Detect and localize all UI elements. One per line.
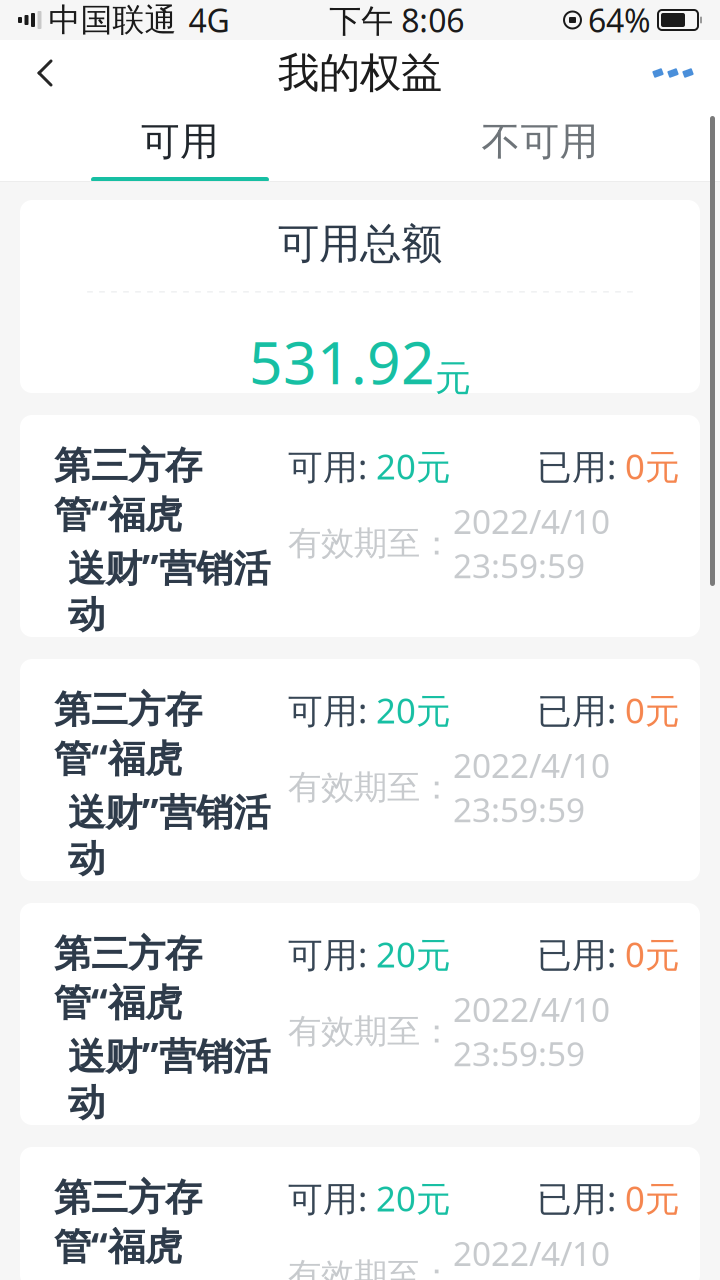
button[interactable]: 第三方存管“福虎 xyxy=(20,659,700,881)
staticText: 送财”营销活动 xyxy=(68,786,270,882)
staticText: 送财”营销活动 xyxy=(68,1030,270,1126)
staticText: 2022/4/10 23:59:59 xyxy=(453,499,610,587)
staticText: 2022/4/10 23:59:59 xyxy=(453,987,610,1075)
staticText: 不可用 xyxy=(481,118,598,165)
staticText: 有效期至： xyxy=(288,1255,453,1280)
staticText: 下午 8:06 xyxy=(329,0,464,41)
staticText: 第三方存管“福虎 xyxy=(54,443,202,538)
staticText: 2022/4/10 23:59:59 xyxy=(453,1231,610,1280)
staticText: 有效期至： xyxy=(288,523,453,564)
button[interactable]: 可用 xyxy=(0,106,360,182)
staticText: 20元 xyxy=(376,1175,451,1221)
staticText: 20元 xyxy=(376,931,451,977)
button[interactable]: 第三方存管“福虎 xyxy=(20,903,700,1125)
staticText: 有效期至： xyxy=(288,1011,453,1052)
staticText: 中国联通 xyxy=(48,0,176,40)
staticText: 我的权益 xyxy=(278,48,442,98)
staticText: 送财”营销活动 xyxy=(68,542,270,638)
staticText: 详细信息 xyxy=(54,941,198,985)
button[interactable]: 不可用 xyxy=(360,106,720,182)
staticText: 详细信息 xyxy=(54,697,198,741)
staticText: 可用总额 xyxy=(278,219,442,269)
staticText: 详细信息 xyxy=(54,1185,198,1229)
staticText: 已用: xyxy=(537,1175,625,1221)
staticText: 0元 xyxy=(625,443,680,489)
staticText: 2022/4/10 23:59:59 xyxy=(453,743,610,831)
staticText: 元 xyxy=(435,356,471,400)
staticText: 20元 xyxy=(376,443,451,489)
staticText: 已用: xyxy=(537,687,625,733)
staticText: 20元 xyxy=(376,687,451,733)
staticText: 第三方存管“福虎 xyxy=(54,1175,202,1270)
staticText: 可用 xyxy=(141,118,219,165)
button[interactable]: 更多 xyxy=(638,40,708,106)
staticText: 531.92 xyxy=(249,322,435,400)
staticText: 0元 xyxy=(625,687,680,733)
staticText: 有效期至： xyxy=(288,767,453,808)
staticText: 可用: xyxy=(288,931,376,977)
button[interactable]: 返回 xyxy=(12,40,78,106)
staticText: 可用: xyxy=(288,443,376,489)
staticText: 可用: xyxy=(288,687,376,733)
staticText: 已用: xyxy=(537,443,625,489)
button[interactable]: 第三方存管“福虎 xyxy=(20,1147,700,1280)
staticText: 0元 xyxy=(625,931,680,977)
staticText: 64% xyxy=(588,0,651,41)
button[interactable]: 第三方存管“福虎 xyxy=(20,415,700,637)
staticText: 0元 xyxy=(625,1175,680,1221)
staticText: 可用: xyxy=(288,1175,376,1221)
staticText: 第三方存管“福虎 xyxy=(54,931,202,1026)
staticText: 第三方存管“福虎 xyxy=(54,687,202,782)
staticText: 4G xyxy=(188,0,229,41)
staticText: 已用: xyxy=(537,931,625,977)
